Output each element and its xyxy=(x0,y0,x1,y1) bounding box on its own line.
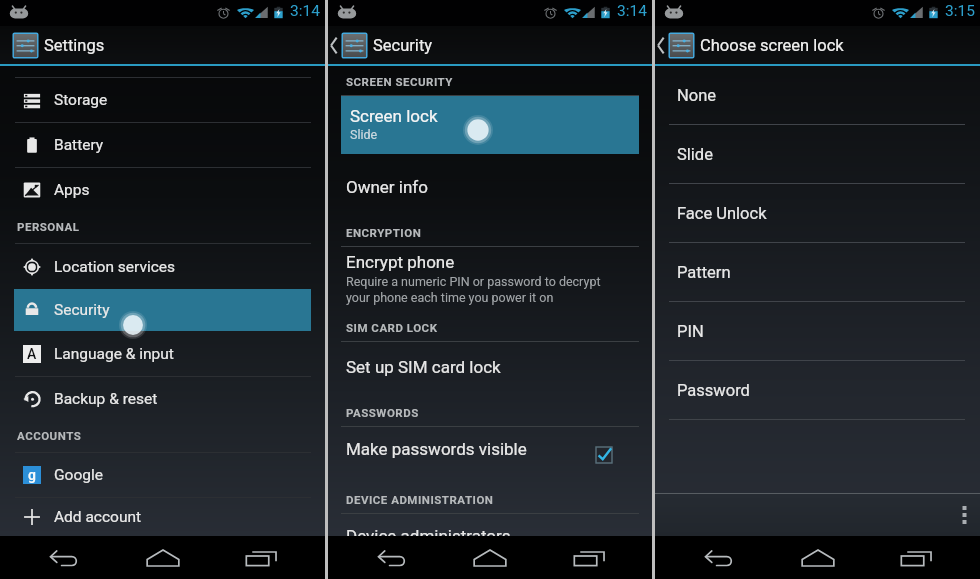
staticText: A xyxy=(27,346,37,362)
button[interactable]: A xyxy=(0,331,325,376)
button[interactable]: Make passwords visible xyxy=(328,427,652,475)
staticText: Slide xyxy=(350,127,378,142)
staticText: Choose screen lock xyxy=(700,36,844,55)
staticText: Apps xyxy=(54,181,90,199)
staticText: Face Unlock xyxy=(677,204,767,223)
button[interactable]: Home xyxy=(783,536,853,579)
staticText: Security xyxy=(54,301,110,319)
button[interactable]: Location services xyxy=(0,244,325,289)
button[interactable]: Security xyxy=(14,289,311,331)
button[interactable]: More options xyxy=(948,494,980,536)
staticText: Slide xyxy=(677,145,713,164)
button[interactable]: Encrypt phone xyxy=(328,247,652,305)
button[interactable]: Home xyxy=(128,536,198,579)
button[interactable]: Back xyxy=(357,536,427,579)
staticText: 3:14 xyxy=(290,2,320,20)
staticText: Password xyxy=(677,381,750,400)
button[interactable]: g xyxy=(0,453,325,497)
button[interactable]: None xyxy=(655,66,980,125)
button[interactable]: Backup & reset xyxy=(0,377,325,421)
staticText: SIM CARD LOCK xyxy=(346,321,438,334)
staticText: Require a numeric PIN or password to dec… xyxy=(346,274,601,289)
staticText: 3:15 xyxy=(945,2,975,20)
button[interactable]: Owner info xyxy=(328,170,652,204)
button[interactable]: PIN xyxy=(655,302,980,361)
staticText: Device administrators xyxy=(346,526,511,536)
staticText: Storage xyxy=(54,91,108,109)
button[interactable]: Recent apps xyxy=(881,536,951,579)
button[interactable]: Screen lock xyxy=(341,96,639,154)
button[interactable]: Face Unlock xyxy=(655,184,980,243)
button[interactable]: Security xyxy=(328,26,433,64)
staticText: Encrypt phone xyxy=(346,252,455,272)
staticText: DEVICE ADMINISTRATION xyxy=(346,493,494,506)
staticText: Set up SIM card lock xyxy=(346,357,501,377)
button[interactable]: Slide xyxy=(655,125,980,184)
staticText: None xyxy=(677,86,717,105)
staticText: Location services xyxy=(54,258,176,276)
button[interactable]: Password xyxy=(655,361,980,420)
staticText: PERSONAL xyxy=(17,220,80,233)
staticText: ACCOUNTS xyxy=(17,429,82,442)
button[interactable]: Storage xyxy=(0,78,325,122)
button[interactable]: Pattern xyxy=(655,243,980,302)
staticText: Pattern xyxy=(677,263,731,282)
button[interactable]: Add account xyxy=(0,498,325,536)
button[interactable]: Back xyxy=(29,536,99,579)
staticText: Screen lock xyxy=(350,106,438,126)
staticText: PIN xyxy=(677,322,704,341)
staticText: g xyxy=(28,467,36,483)
button[interactable]: Set up SIM card lock xyxy=(328,342,652,392)
staticText: your phone each time you power it on xyxy=(346,290,554,305)
staticText: PASSWORDS xyxy=(346,406,419,419)
staticText: Add account xyxy=(54,508,142,526)
staticText: Backup & reset xyxy=(54,390,158,408)
staticText: Battery xyxy=(54,136,104,154)
button[interactable]: Recent apps xyxy=(226,536,296,579)
button[interactable]: Recent apps xyxy=(554,536,624,579)
staticText: SCREEN SECURITY xyxy=(346,75,453,88)
staticText: ENCRYPTION xyxy=(346,226,422,239)
button[interactable]: Home xyxy=(455,536,525,579)
button[interactable]: Settings xyxy=(0,26,105,64)
button[interactable]: Battery xyxy=(0,123,325,167)
staticText: Security xyxy=(373,36,433,55)
staticText: Settings xyxy=(44,36,105,55)
staticText: Language & input xyxy=(54,345,174,363)
staticText: Owner info xyxy=(346,177,428,197)
staticText: Make passwords visible xyxy=(346,439,527,459)
button[interactable]: Back xyxy=(684,536,754,579)
staticText: Google xyxy=(54,466,103,484)
staticText: 3:14 xyxy=(617,2,647,20)
button[interactable]: Choose screen lock xyxy=(655,26,844,64)
button[interactable]: Apps xyxy=(0,168,325,212)
